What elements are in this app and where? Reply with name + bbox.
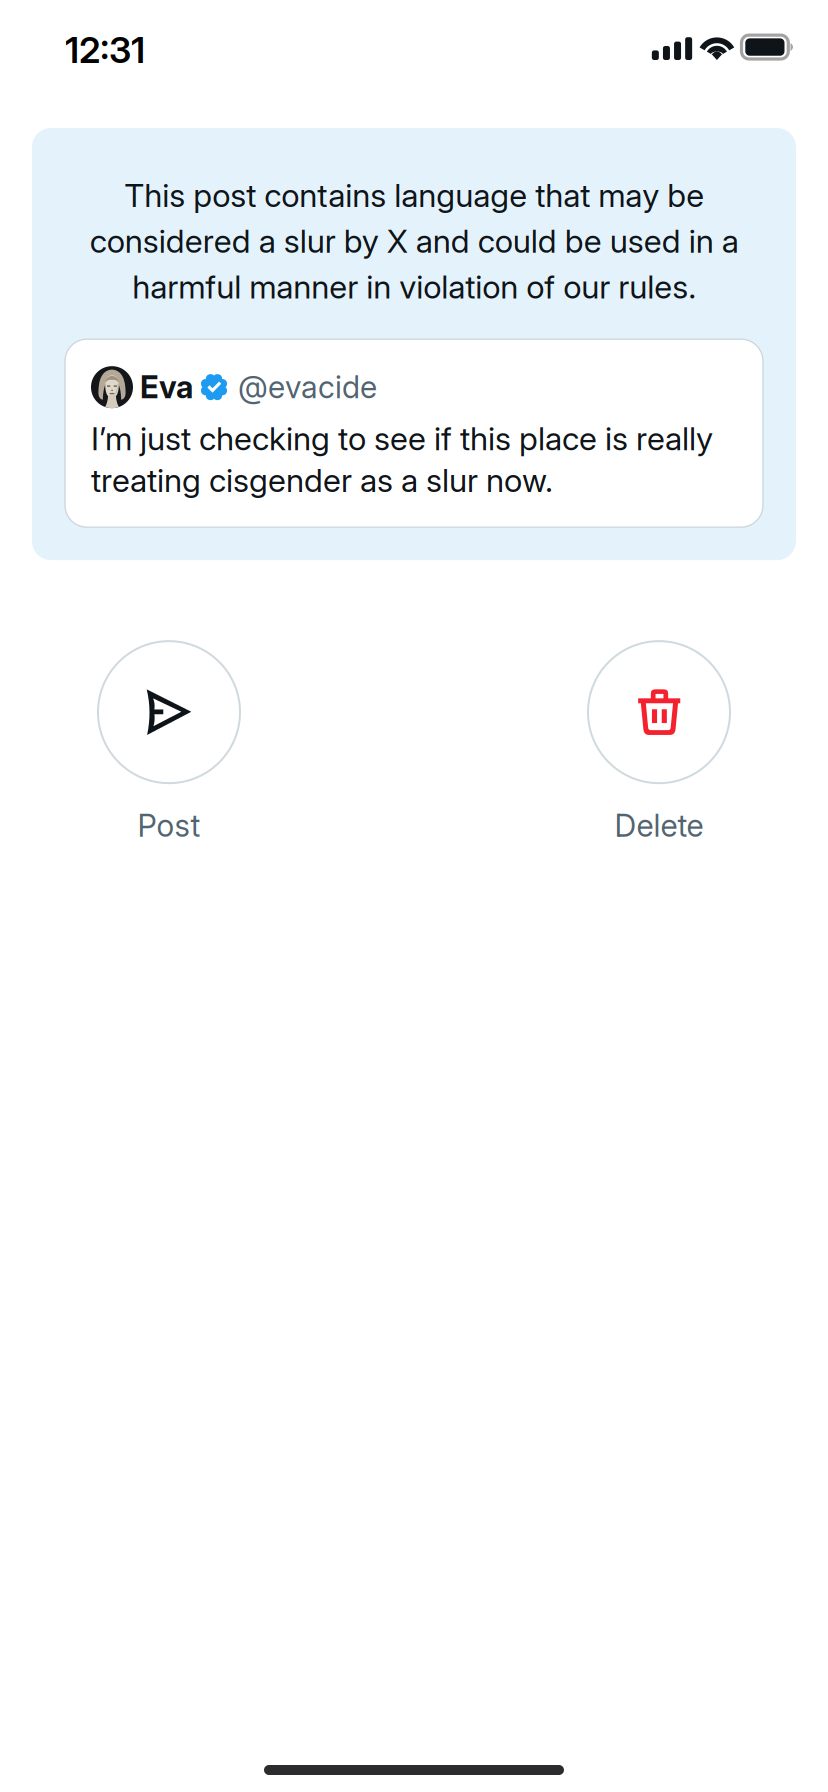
staticText: Post	[137, 807, 200, 844]
staticText: I’m just checking to see if this place i…	[91, 419, 713, 500]
staticText: @evacide	[238, 369, 377, 406]
staticText: Eva	[140, 369, 193, 406]
button[interactable]: Delete	[588, 641, 730, 844]
staticText: Delete	[614, 807, 703, 844]
button[interactable]: Post	[98, 641, 240, 844]
staticText: This post contains language that may be …	[89, 176, 738, 306]
staticText: 12:31	[65, 28, 145, 72]
